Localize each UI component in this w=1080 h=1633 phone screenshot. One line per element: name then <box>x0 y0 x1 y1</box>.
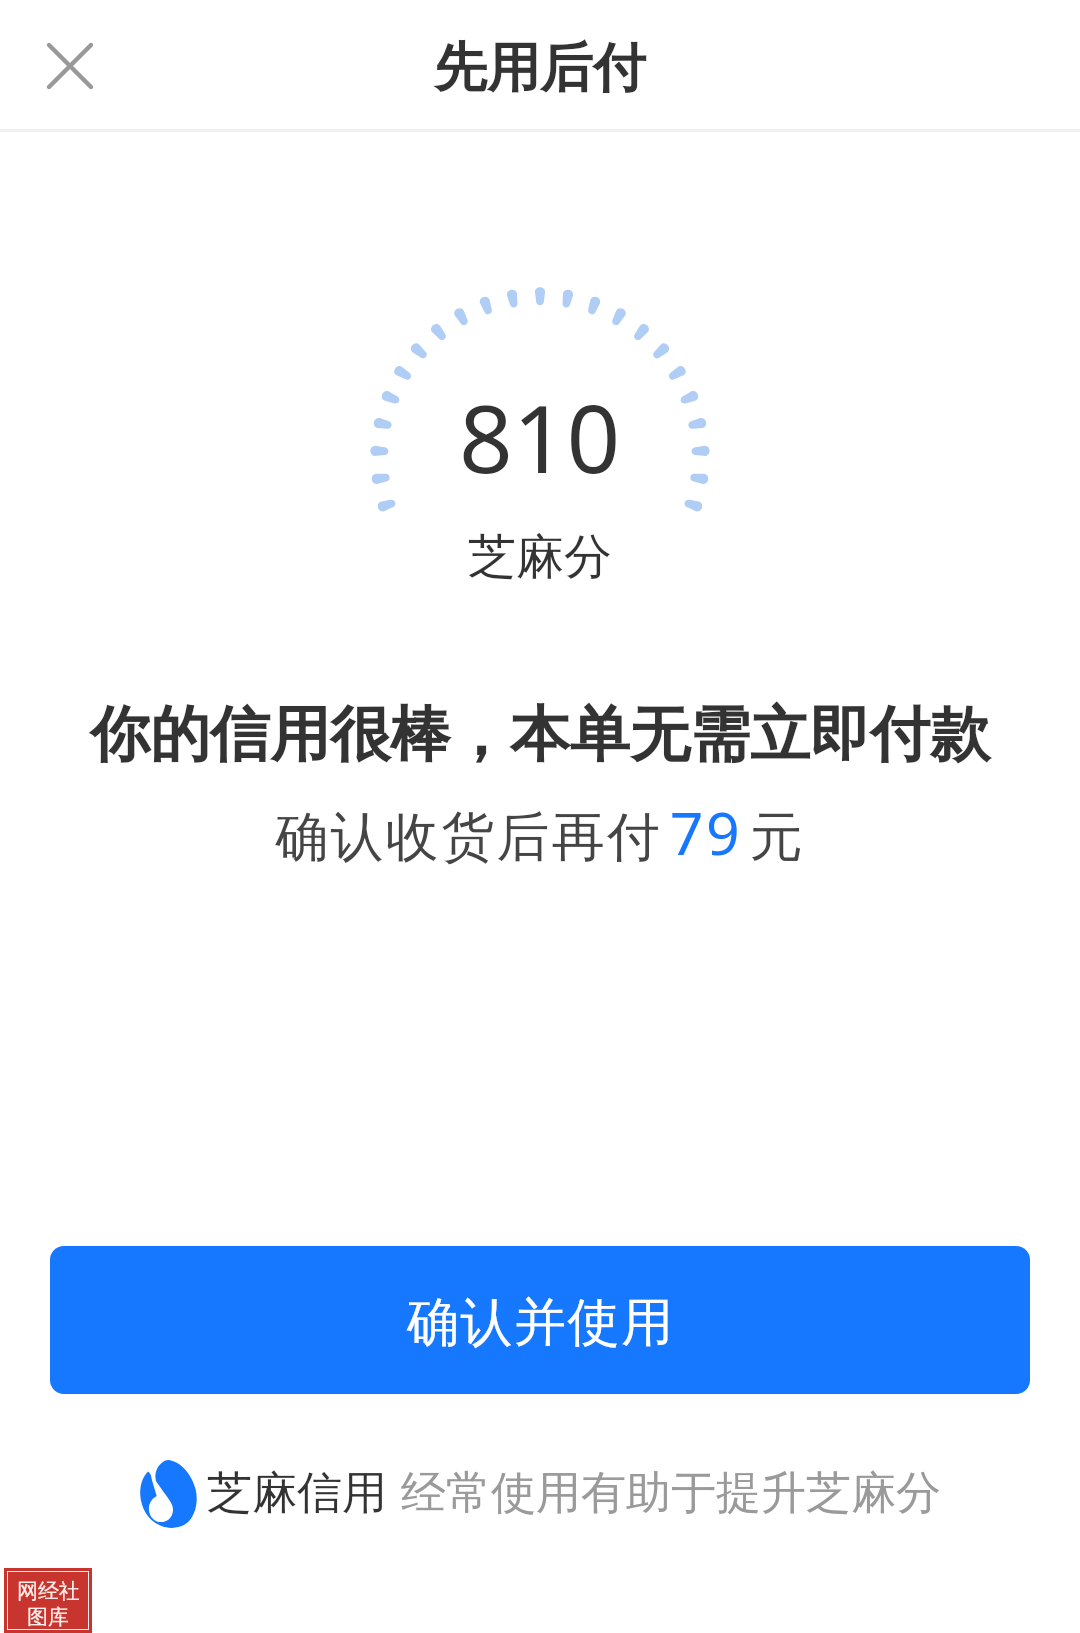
button[interactable]: Close <box>25 20 115 110</box>
button[interactable]: 芝麻信用 <box>0 1459 1080 1527</box>
staticText: 网经社 <box>17 1578 80 1604</box>
staticText: 经常使用有助于提升芝麻分 <box>401 1465 941 1522</box>
staticText: 810 <box>459 373 621 501</box>
staticText: 图库 <box>27 1604 69 1630</box>
staticText: 你的信用很棒，本单无需立即付款 <box>0 697 1080 773</box>
button[interactable]: 确认并使用 <box>50 1246 1030 1394</box>
staticText: 芝麻分 <box>468 527 612 587</box>
staticText: 确认收货后再付 79 元 <box>0 792 1080 872</box>
staticText: 先用后付 <box>434 35 646 102</box>
staticText: 芝麻信用 <box>207 1465 387 1522</box>
staticText: 确认并使用 <box>406 1290 674 1356</box>
